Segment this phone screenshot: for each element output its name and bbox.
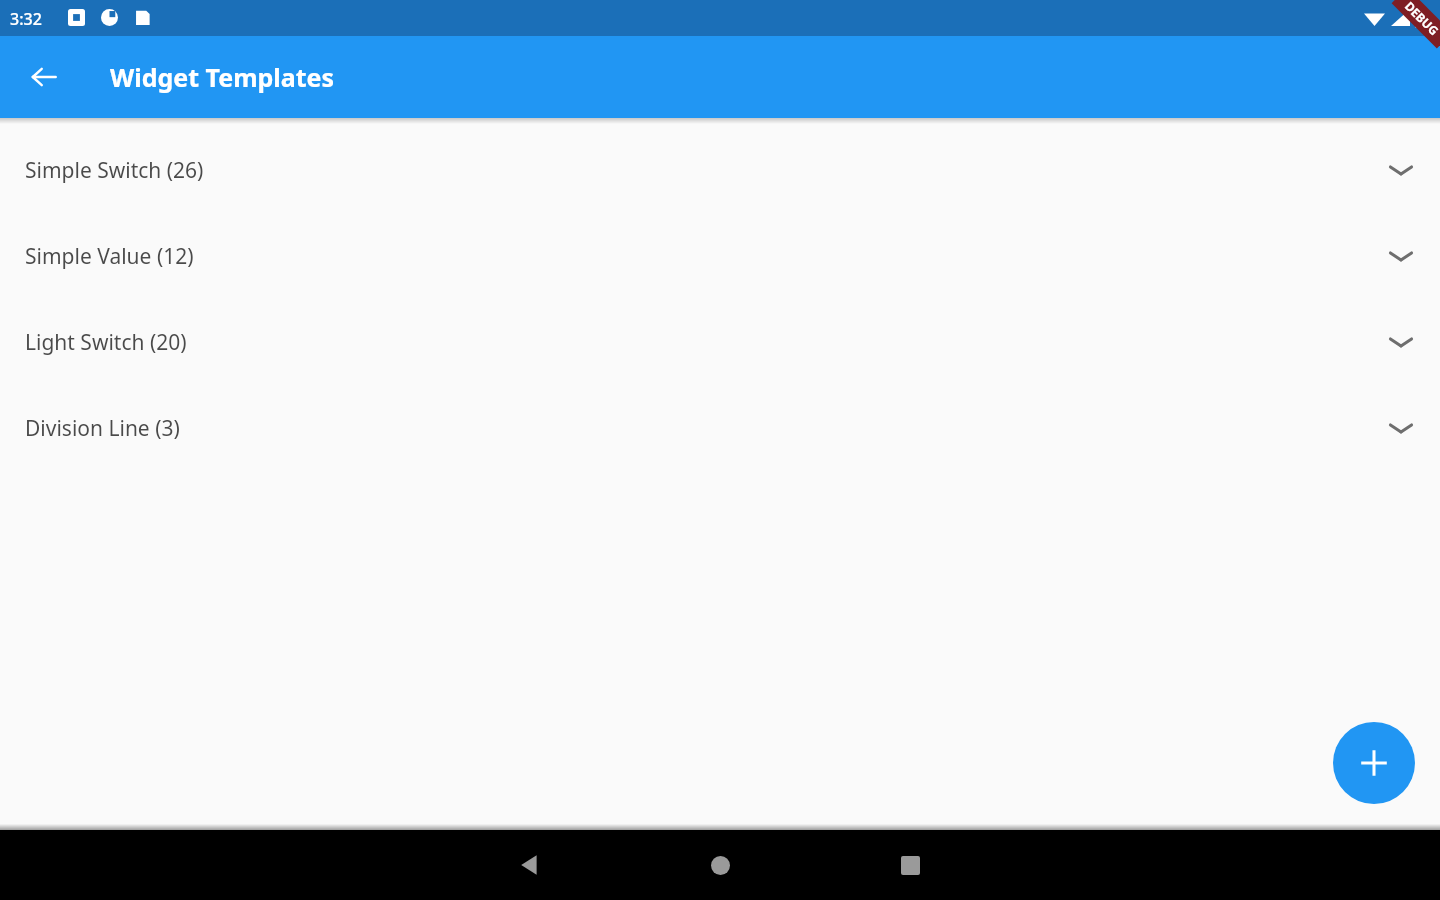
staticText: Light Switch (20)	[25, 328, 187, 357]
button[interactable]: Division Line (3)	[0, 385, 1440, 471]
button[interactable]: Light Switch (20)	[0, 299, 1440, 385]
button[interactable]: Recent apps	[886, 841, 934, 889]
staticText: Widget Templates	[110, 60, 335, 94]
staticText: DEBUG	[1401, 0, 1440, 38]
staticText: Division Line (3)	[25, 414, 180, 443]
button[interactable]: Navigate up	[20, 53, 68, 101]
button[interactable]: Add template	[1333, 722, 1415, 804]
staticText: 3:32	[10, 8, 42, 30]
staticText: Simple Switch (26)	[25, 156, 204, 185]
button[interactable]: Simple Value (12)	[0, 213, 1440, 299]
button[interactable]: Back	[506, 841, 554, 889]
button[interactable]: Home	[696, 841, 744, 889]
button[interactable]: Simple Switch (26)	[0, 127, 1440, 213]
staticText: Simple Value (12)	[25, 242, 194, 271]
